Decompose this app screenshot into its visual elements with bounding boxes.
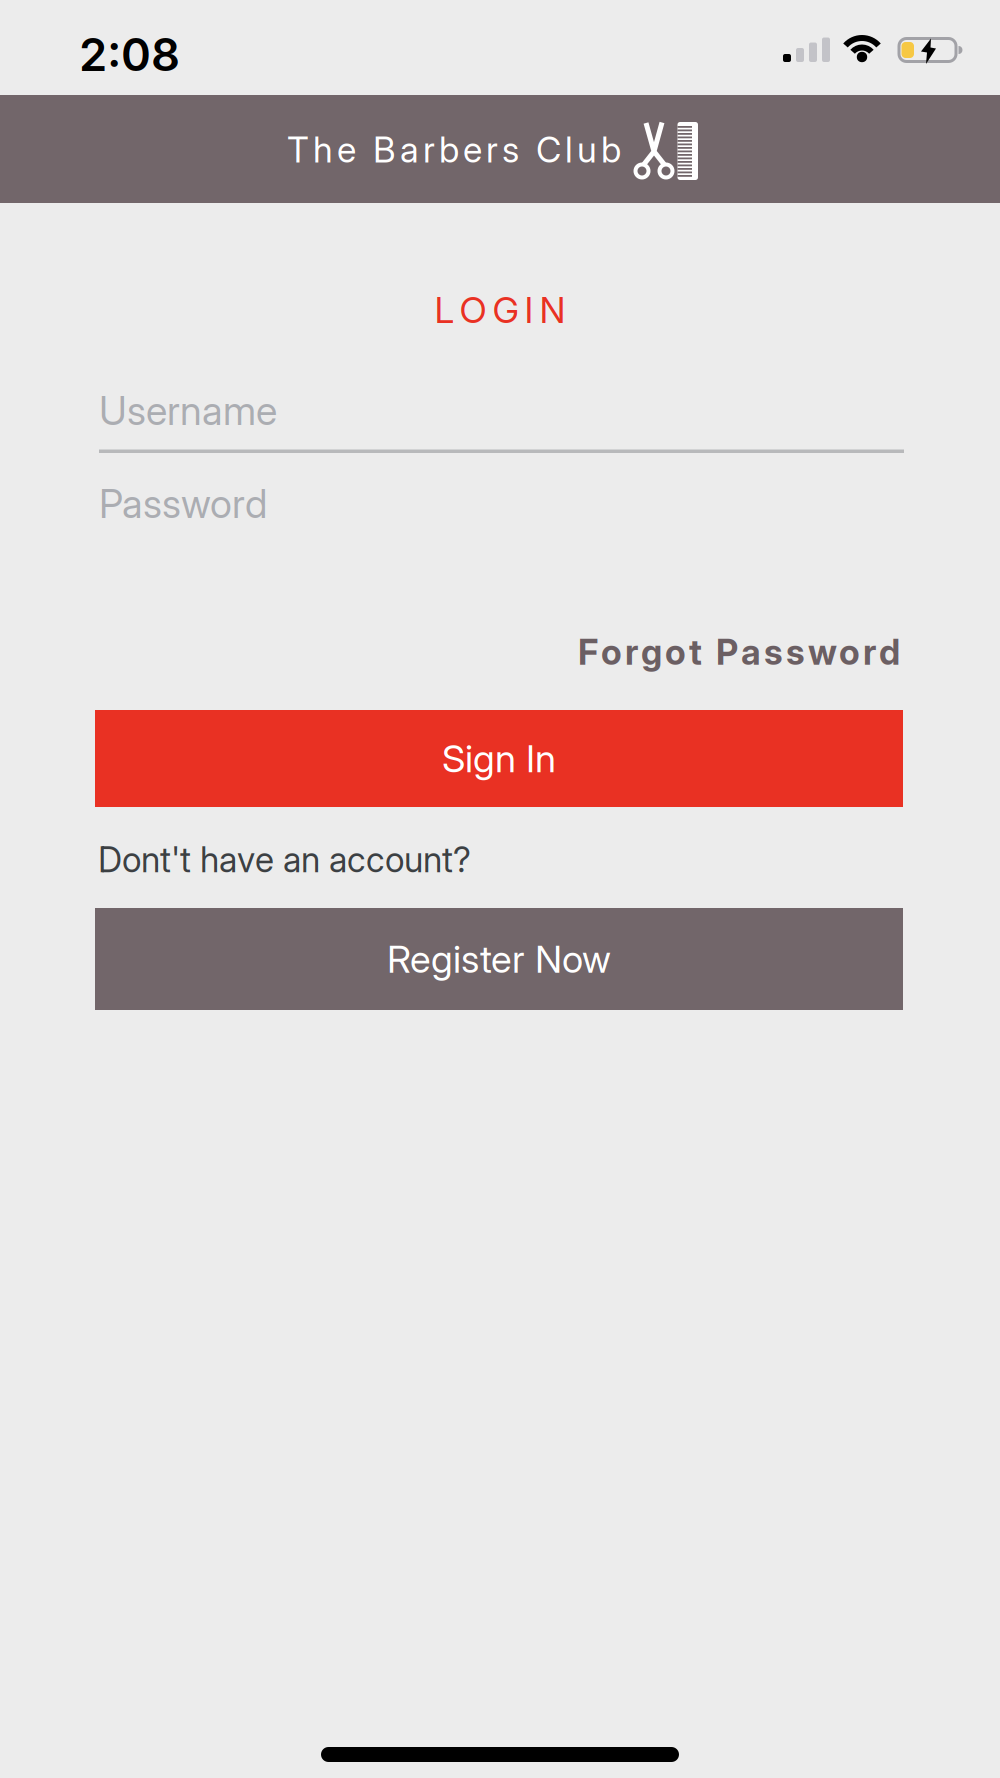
button[interactable]: Username [99,387,904,453]
button[interactable]: Password [99,480,904,532]
staticText: Username [99,387,277,434]
staticText: Sign In [442,736,556,781]
staticText: The Barbers Club [287,128,621,171]
staticText: Dont't have an account? [98,839,471,881]
staticText: Password [99,480,267,527]
button[interactable]: Sign In [95,710,903,807]
staticText: Forgot Password [578,631,900,673]
button[interactable]: Forgot Password [578,631,900,673]
button[interactable]: Register Now [95,908,903,1010]
staticText: 2:08 [79,27,180,82]
staticText: LOGIN [434,288,565,332]
staticText: Register Now [387,936,611,982]
